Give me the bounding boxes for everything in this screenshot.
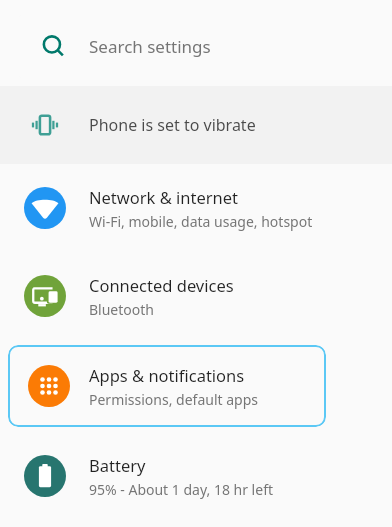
staticText: 95% - About 1 day, 18 hr left <box>89 480 274 499</box>
button[interactable]: Search <box>19 15 392 78</box>
button[interactable]: Phone is set to vibrate <box>0 86 392 164</box>
staticText: Connected devices <box>89 274 234 296</box>
staticText: Permissions, default apps <box>89 390 259 409</box>
button[interactable]: Battery <box>0 432 392 520</box>
button[interactable]: Connected devices <box>0 252 392 340</box>
staticText: Phone is set to vibrate <box>89 114 256 136</box>
button[interactable]: Network & internet <box>0 164 392 252</box>
staticText: Search settings <box>89 35 211 58</box>
staticText: Apps & notifications <box>89 364 245 386</box>
staticText: Battery <box>89 454 146 476</box>
staticText: Bluetooth <box>89 300 154 319</box>
staticText: Wi-Fi, mobile, data usage, hotspot <box>89 212 313 231</box>
button[interactable]: Apps & notifications <box>8 345 326 427</box>
other: Search <box>41 34 67 60</box>
staticText: Network & internet <box>89 186 239 208</box>
